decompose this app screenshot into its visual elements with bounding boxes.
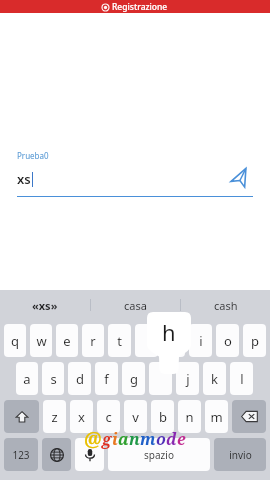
staticText: s bbox=[50, 370, 57, 388]
staticText: cash bbox=[214, 298, 238, 313]
button[interactable]: n bbox=[178, 400, 201, 433]
staticText: i bbox=[199, 332, 203, 350]
staticText: n bbox=[185, 408, 194, 426]
staticText: l bbox=[240, 370, 244, 388]
button[interactable]: «xs» bbox=[0, 290, 90, 320]
button[interactable]: e bbox=[56, 324, 78, 357]
button[interactable]: t bbox=[108, 324, 131, 357]
staticText: o bbox=[156, 428, 166, 450]
staticText: d bbox=[76, 370, 84, 388]
staticText: g bbox=[130, 370, 138, 388]
button[interactable]: Maiuscole bbox=[4, 400, 39, 433]
button[interactable]: j bbox=[176, 362, 199, 395]
staticText: e bbox=[63, 332, 71, 350]
button[interactable]: s bbox=[42, 362, 64, 395]
staticText: v bbox=[132, 408, 139, 426]
button[interactable]: r bbox=[82, 324, 104, 357]
staticText: k bbox=[211, 370, 218, 388]
button[interactable] bbox=[135, 324, 158, 357]
button[interactable]: Registrazione in corso bbox=[0, 0, 270, 13]
button[interactable] bbox=[149, 362, 172, 395]
staticText: e bbox=[177, 428, 186, 450]
staticText: m bbox=[140, 428, 156, 450]
staticText: r bbox=[90, 332, 96, 350]
button[interactable]: w bbox=[30, 324, 52, 357]
staticText: h bbox=[162, 317, 176, 347]
button[interactable]: g bbox=[122, 362, 145, 395]
button[interactable]: Cancella bbox=[232, 400, 266, 433]
button[interactable]: m bbox=[205, 400, 228, 433]
button[interactable]: q bbox=[4, 324, 26, 357]
staticText: a bbox=[23, 370, 31, 388]
staticText: casa bbox=[124, 298, 147, 313]
staticText: a bbox=[118, 428, 129, 450]
staticText: i bbox=[112, 428, 118, 450]
button[interactable]: Cambia lingua bbox=[42, 438, 71, 471]
staticText: q bbox=[11, 332, 19, 350]
staticText: f bbox=[104, 370, 109, 388]
button[interactable]: casa bbox=[91, 290, 180, 320]
staticText: n bbox=[129, 428, 140, 450]
staticText: t bbox=[117, 332, 122, 350]
button[interactable]: x bbox=[70, 400, 93, 433]
staticText: @ bbox=[84, 426, 102, 452]
button[interactable]: cash bbox=[181, 290, 270, 320]
button[interactable]: z bbox=[43, 400, 66, 433]
button[interactable]: Dettatura vocale bbox=[75, 438, 104, 471]
staticText: o bbox=[224, 332, 232, 350]
button[interactable]: p bbox=[243, 324, 266, 357]
button[interactable]: l bbox=[230, 362, 253, 395]
button[interactable]: f bbox=[95, 362, 118, 395]
staticText: w bbox=[36, 332, 47, 350]
button[interactable]: d bbox=[68, 362, 91, 395]
button[interactable]: v bbox=[124, 400, 147, 433]
button[interactable]: Invia bbox=[227, 166, 253, 192]
staticText: c bbox=[105, 408, 112, 426]
button[interactable]: c bbox=[97, 400, 120, 433]
staticText: «xs» bbox=[32, 298, 58, 313]
button[interactable]: 123 bbox=[4, 438, 38, 471]
staticText: xs bbox=[17, 170, 31, 188]
staticText: invio bbox=[229, 448, 252, 462]
staticText: spazio bbox=[144, 448, 174, 462]
staticText: d bbox=[166, 428, 177, 450]
button[interactable]: b bbox=[151, 400, 174, 433]
staticText: z bbox=[51, 408, 58, 426]
staticText: p bbox=[251, 332, 259, 350]
button[interactable]: a bbox=[16, 362, 38, 395]
button[interactable]: spazio bbox=[108, 438, 210, 471]
staticText: 123 bbox=[12, 448, 30, 462]
staticText: m bbox=[210, 408, 223, 426]
staticText: g bbox=[102, 428, 112, 450]
button[interactable] bbox=[162, 324, 185, 357]
button[interactable]: invio bbox=[214, 438, 266, 471]
staticText: Registrazione bbox=[112, 1, 168, 13]
staticText: Prueba0 bbox=[17, 150, 49, 161]
staticText: j bbox=[186, 370, 190, 388]
staticText: b bbox=[159, 408, 167, 426]
button[interactable]: i bbox=[189, 324, 212, 357]
staticText: x bbox=[78, 408, 85, 426]
button[interactable]: o bbox=[216, 324, 239, 357]
button[interactable]: k bbox=[203, 362, 226, 395]
